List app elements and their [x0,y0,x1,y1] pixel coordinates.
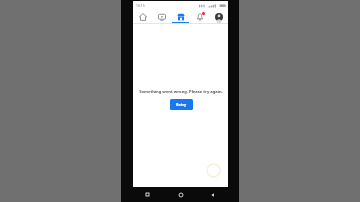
button[interactable]: Profile [209,10,228,23]
button[interactable]: Recents [142,189,153,200]
button[interactable]: Home [175,189,186,200]
button[interactable]: Video [152,10,171,23]
staticText: Retry [176,102,187,107]
button[interactable]: Home [133,10,152,23]
staticText: 10:16 [136,3,145,8]
staticText: Something went wrong. Please try again. [139,89,223,95]
button[interactable]: Marketplace [171,10,190,23]
button[interactable]: Retry [170,99,193,110]
button[interactable]: Notifications [190,10,209,23]
button[interactable]: Back [207,189,218,200]
